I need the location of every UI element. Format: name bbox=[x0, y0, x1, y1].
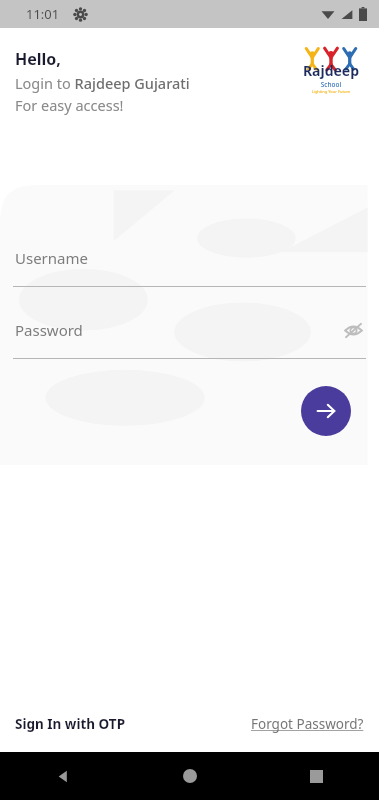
staticText: School bbox=[295, 80, 367, 89]
staticText: Forgot Password? bbox=[251, 715, 364, 733]
button[interactable]: Sign in bbox=[301, 386, 351, 436]
staticText: Sign In with OTP bbox=[15, 715, 126, 733]
staticText: Lighting Your Future bbox=[295, 89, 367, 94]
button[interactable]: Username bbox=[0, 243, 379, 287]
staticText: 11:01 bbox=[26, 5, 60, 23]
button[interactable]: Home bbox=[127, 752, 253, 800]
staticText: Username bbox=[15, 248, 88, 268]
button[interactable]: Back bbox=[0, 752, 127, 800]
staticText: Hello, bbox=[15, 48, 61, 70]
button[interactable]: Sign In with OTP bbox=[15, 711, 126, 737]
button[interactable]: Recent apps bbox=[253, 752, 379, 800]
staticText: For easy access! bbox=[15, 95, 124, 115]
button[interactable]: Show password bbox=[340, 317, 366, 343]
button[interactable]: Forgot Password? bbox=[251, 711, 364, 737]
staticText: Password bbox=[15, 320, 83, 340]
staticText: Login to Rajdeep Gujarati bbox=[15, 73, 190, 93]
staticText: Rajdeep bbox=[295, 61, 367, 80]
button[interactable]: Password bbox=[0, 315, 379, 359]
